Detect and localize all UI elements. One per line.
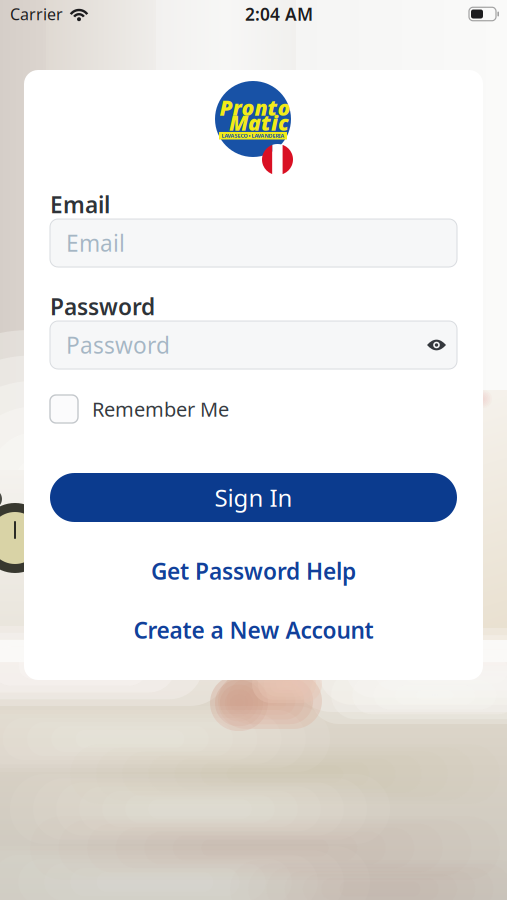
staticText: Sign In: [214, 482, 292, 513]
staticText: LAVASECO • LAVANDERIA: [221, 132, 284, 139]
staticText: Remember Me: [92, 396, 229, 422]
staticText: Matic: [229, 108, 289, 137]
button[interactable]: Remember Me: [50, 394, 457, 424]
button[interactable]: Get Password Help: [50, 557, 457, 585]
button[interactable]: Create a New Account: [50, 616, 457, 644]
staticText: 2:04 AM: [245, 2, 313, 25]
staticText: Password: [66, 330, 170, 360]
staticText: Email: [66, 228, 125, 258]
staticText: Pronto: [219, 93, 290, 122]
staticText: Create a New Account: [133, 615, 373, 645]
button[interactable]: Sign In: [50, 473, 457, 522]
staticText: Password: [50, 291, 155, 321]
staticText: Get Password Help: [151, 556, 356, 586]
staticText: Email: [50, 189, 110, 219]
staticText: Carrier: [10, 3, 63, 25]
